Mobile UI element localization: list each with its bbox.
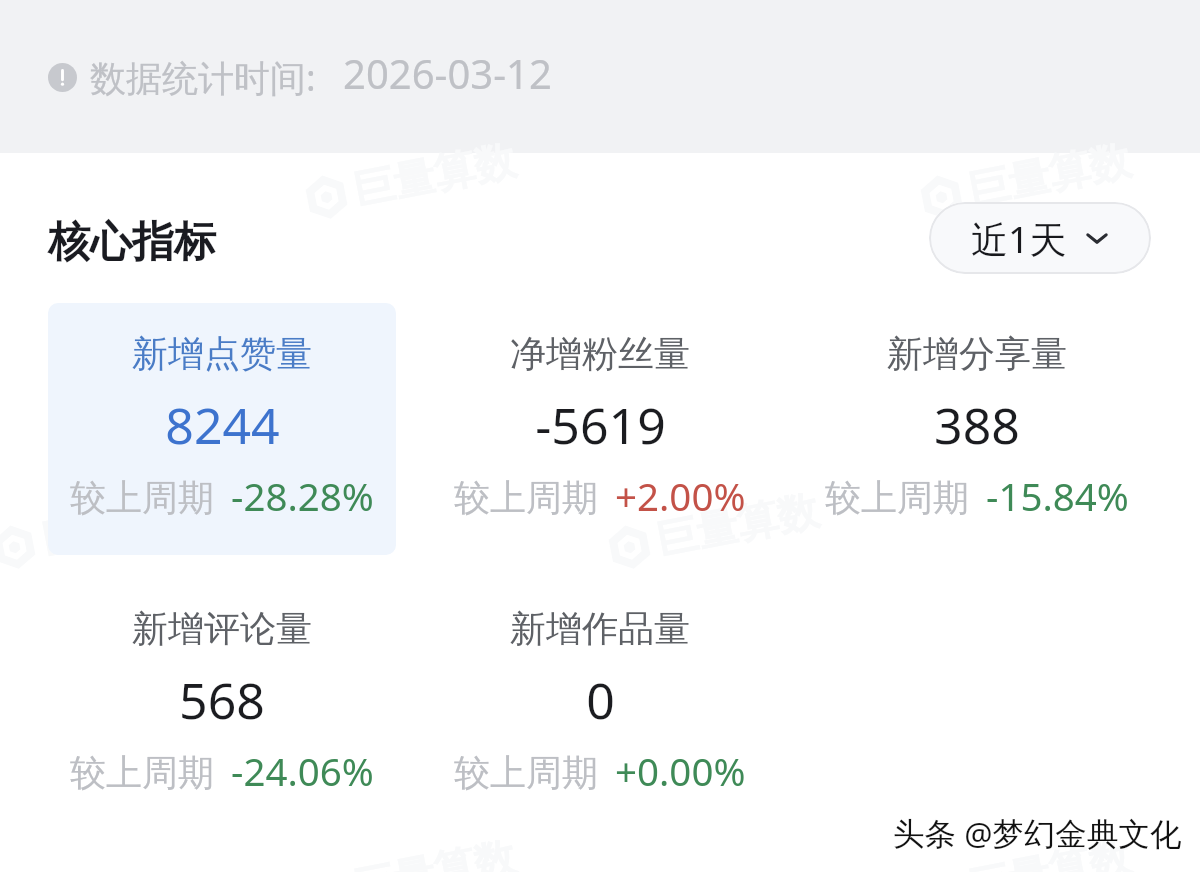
staticText: 568 <box>179 666 265 734</box>
staticText: 新增分享量 <box>887 331 1067 376</box>
staticText: 头条 @梦幻金典文化 <box>893 811 1182 854</box>
staticText: 巨量算数 <box>349 832 520 872</box>
staticText: 较上周期 <box>70 475 214 520</box>
staticText: 巨量算数 <box>37 485 208 567</box>
staticText: -5619 <box>535 391 666 459</box>
staticText: -15.84% <box>986 470 1129 522</box>
staticText: 数据统计时间: <box>90 53 316 102</box>
staticText: 较上周期 <box>454 475 598 520</box>
staticText: 8244 <box>165 391 280 459</box>
staticText: 巨量算数 <box>349 135 520 217</box>
staticText: 近1天 <box>971 213 1067 264</box>
staticText: 巨量算数 <box>964 832 1135 872</box>
button[interactable]: 新增作品量 <box>426 578 774 830</box>
staticText: 388 <box>934 391 1020 459</box>
staticText: 新增点赞量 <box>132 331 312 376</box>
staticText: -28.28% <box>231 470 374 522</box>
button[interactable]: 近1天 <box>929 202 1151 274</box>
other: Expand date range <box>1085 226 1109 250</box>
staticText: 核心指标 <box>48 216 216 269</box>
button[interactable]: 新增分享量 <box>803 303 1151 555</box>
staticText: -24.06% <box>231 745 374 797</box>
staticText: 新增作品量 <box>510 606 690 651</box>
button[interactable]: 新增评论量 <box>48 578 396 830</box>
staticText: 0 <box>586 666 615 734</box>
staticText: +0.00% <box>615 745 746 797</box>
staticText: +2.00% <box>615 470 746 522</box>
button[interactable]: 新增点赞量 <box>48 303 396 555</box>
other: Info <box>48 63 77 92</box>
staticText: 较上周期 <box>825 475 969 520</box>
staticText: 较上周期 <box>454 750 598 795</box>
staticText: 净增粉丝量 <box>510 331 690 376</box>
button[interactable]: 净增粉丝量 <box>426 303 774 555</box>
staticText: 巨量算数 <box>652 485 823 567</box>
staticText: 巨量算数 <box>964 135 1135 217</box>
staticText: 2026-03-12 <box>343 46 552 100</box>
staticText: 新增评论量 <box>132 606 312 651</box>
staticText: 较上周期 <box>70 750 214 795</box>
